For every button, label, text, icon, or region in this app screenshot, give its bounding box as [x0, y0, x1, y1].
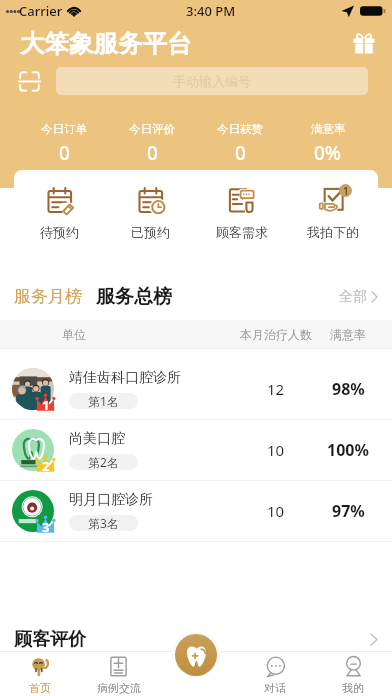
staticText: 满意率	[330, 327, 366, 342]
staticText: 本月治疗人数	[240, 327, 312, 342]
button[interactable]: 服务月榜	[14, 286, 82, 307]
staticText: 靖佳齿科口腔诊所	[69, 369, 181, 387]
staticText: 2	[42, 457, 50, 474]
button[interactable]: 1	[287, 170, 378, 253]
staticText: 我的	[342, 681, 364, 695]
staticText: 已预约	[131, 224, 170, 240]
staticText: 顾客需求	[216, 224, 268, 240]
button[interactable]: 全部	[339, 288, 378, 306]
staticText: 0%	[314, 140, 342, 163]
staticText: 待预约	[40, 224, 79, 240]
button[interactable]: 首页	[0, 652, 79, 696]
button[interactable]: 手动输入编号	[56, 67, 368, 95]
staticText: 97%	[332, 500, 365, 522]
staticText: 第3名	[88, 515, 119, 531]
staticText: 服务月榜	[14, 286, 82, 307]
button[interactable]: 3	[0, 481, 392, 541]
button[interactable]: 我的	[314, 652, 392, 696]
button[interactable]: 对话	[236, 652, 314, 696]
button[interactable]: 病例交流	[79, 652, 158, 696]
staticText: Carrier	[19, 2, 63, 20]
staticText: 第2名	[88, 454, 119, 470]
staticText: 尚美口腔	[69, 430, 125, 448]
button[interactable]: 今日获赞	[196, 119, 284, 163]
staticText: 1	[343, 184, 349, 197]
button[interactable]: 服务总榜	[96, 285, 172, 309]
staticText: 98%	[332, 378, 365, 400]
staticText: 0	[147, 140, 158, 163]
staticText: 1	[42, 396, 50, 413]
button[interactable]: 今日评价	[108, 119, 196, 163]
button[interactable]: 礼物	[348, 27, 380, 59]
staticText: 0	[235, 140, 246, 163]
button[interactable]: 顾客评价	[0, 607, 392, 651]
staticText: 10	[267, 501, 285, 521]
button[interactable]: 顾客需求	[196, 170, 287, 253]
staticText: 病例交流	[97, 681, 141, 695]
staticText: 我拍下的	[307, 224, 359, 240]
button[interactable]: 1	[0, 349, 392, 419]
staticText: 第1名	[88, 393, 119, 409]
staticText: 10	[267, 440, 285, 460]
staticText: 首页	[29, 681, 51, 695]
staticText: 今日获赞	[217, 122, 263, 136]
staticText: 3	[42, 518, 50, 535]
staticText: 12	[267, 379, 285, 399]
button[interactable]: 扫一扫	[15, 67, 43, 95]
staticText: 手动输入编号	[173, 73, 251, 89]
staticText: 顾客评价	[14, 628, 86, 651]
staticText: 对话	[264, 681, 286, 695]
staticText: 3:40 PM	[186, 2, 236, 20]
staticText: 今日评价	[129, 122, 175, 136]
staticText: 全部	[339, 288, 367, 306]
staticText: 今日订单	[41, 122, 87, 136]
staticText: 明月口腔诊所	[69, 491, 153, 509]
button[interactable]: 发布服务	[172, 632, 220, 677]
button[interactable]: 2	[0, 420, 392, 480]
staticText: 满意率	[311, 122, 346, 136]
staticText: 单位	[62, 327, 86, 342]
staticText: 100%	[327, 439, 369, 461]
staticText: 大笨象服务平台	[20, 28, 192, 59]
staticText: 服务总榜	[96, 285, 172, 309]
button[interactable]: 已预约	[105, 170, 196, 253]
button[interactable]: 待预约	[14, 170, 105, 253]
button[interactable]: 满意率	[284, 119, 372, 163]
button[interactable]: 今日订单	[20, 119, 108, 163]
staticText: 0	[59, 140, 70, 163]
